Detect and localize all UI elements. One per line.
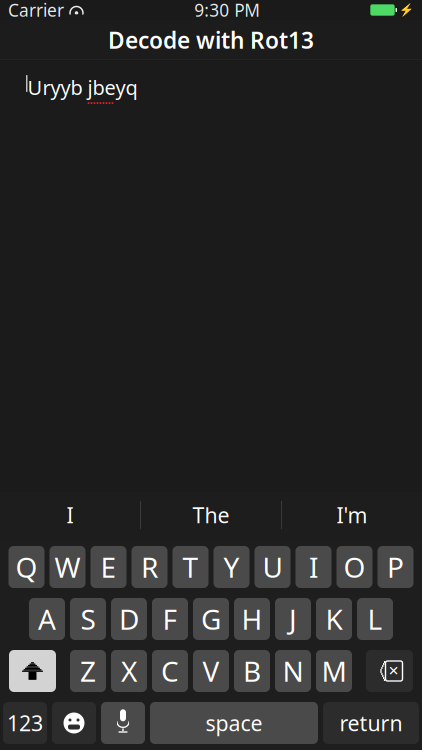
staticText: P [387, 548, 404, 586]
staticText: M [321, 652, 346, 690]
staticText: ✕ [388, 663, 399, 678]
staticText: B [243, 652, 261, 690]
button[interactable]: Q [8, 546, 44, 588]
button[interactable]: U [254, 546, 290, 588]
staticText: G [201, 600, 221, 638]
staticText: R [141, 548, 158, 586]
staticText: X [121, 652, 137, 690]
button[interactable]: C [152, 650, 188, 692]
button[interactable]: X [111, 650, 147, 692]
button[interactable]: I [0, 492, 140, 538]
staticText: I'm [336, 501, 367, 529]
button[interactable]: H [234, 598, 270, 640]
staticText: Decode with Rot13 [108, 25, 314, 55]
button[interactable]: A [29, 598, 65, 640]
button[interactable]: P [377, 546, 413, 588]
staticText: Q [15, 548, 37, 586]
staticText: N [282, 652, 303, 690]
staticText: W [54, 548, 80, 586]
staticText: I [66, 501, 73, 529]
staticText: The [192, 501, 229, 529]
staticText: F [162, 600, 177, 638]
staticText: I [309, 548, 318, 586]
staticText: Y [223, 548, 239, 586]
button[interactable]: E [90, 546, 126, 588]
button[interactable]: Dictation [101, 702, 145, 744]
staticText: D [119, 600, 139, 638]
button[interactable]: D [111, 598, 147, 640]
button[interactable]: Z [70, 650, 106, 692]
button[interactable]: F [152, 598, 188, 640]
staticText: C [161, 652, 179, 690]
staticText: 9:30 PM [194, 0, 260, 21]
button[interactable]: Shift [9, 650, 56, 692]
staticText: S [80, 600, 95, 638]
button[interactable]: N [275, 650, 311, 692]
button[interactable]: W [49, 546, 85, 588]
staticText: E [100, 548, 116, 586]
staticText: O [343, 548, 365, 586]
button[interactable]: space [150, 702, 318, 744]
staticText: jbeyq [87, 74, 137, 101]
staticText: L [367, 600, 382, 638]
staticText: A [38, 600, 56, 638]
button[interactable]: T [172, 546, 208, 588]
button[interactable]: Delete [366, 650, 413, 692]
button[interactable]: R [131, 546, 167, 588]
staticText: H [241, 600, 262, 638]
staticText: U [262, 548, 282, 586]
button[interactable]: B [234, 650, 270, 692]
button[interactable]: G [193, 598, 229, 640]
staticText: K [325, 600, 342, 638]
button[interactable]: M [316, 650, 352, 692]
button[interactable]: Emoji [52, 702, 96, 744]
staticText: 123 [7, 709, 43, 737]
staticText: ⚡ [399, 3, 414, 17]
staticText: V [202, 652, 219, 690]
button[interactable]: I'm [282, 492, 422, 538]
button[interactable]: 123 [3, 702, 47, 744]
button[interactable]: O [336, 546, 372, 588]
button[interactable]: K [316, 598, 352, 640]
staticText: return [339, 709, 402, 737]
button[interactable]: J [275, 598, 311, 640]
button[interactable]: L [357, 598, 393, 640]
button[interactable]: The [141, 492, 281, 538]
staticText: Uryyb [27, 74, 87, 101]
staticText: J [289, 600, 297, 638]
button[interactable]: V [193, 650, 229, 692]
staticText: Carrier [8, 0, 64, 21]
button[interactable]: Y [213, 546, 249, 588]
button[interactable]: return [323, 702, 419, 744]
button[interactable]: S [70, 598, 106, 640]
button[interactable]: I [295, 546, 331, 588]
staticText: space [205, 709, 262, 737]
staticText: Z [80, 652, 96, 690]
staticText: T [182, 548, 198, 586]
